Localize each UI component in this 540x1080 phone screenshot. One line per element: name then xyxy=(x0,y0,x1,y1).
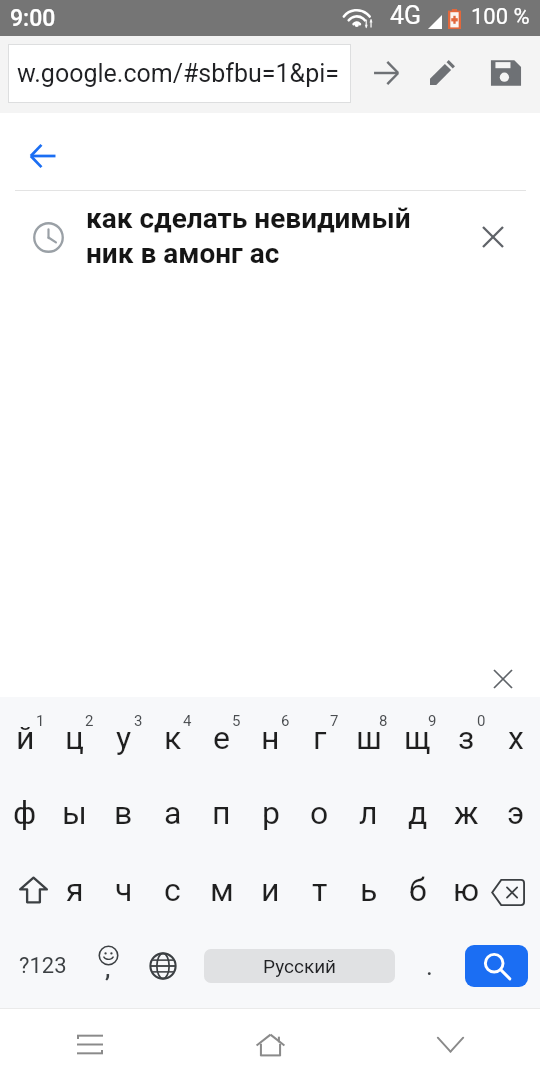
button[interactable]: о xyxy=(295,775,344,850)
staticText: й xyxy=(16,719,35,757)
button[interactable]: л xyxy=(344,775,393,850)
button[interactable]: Emoji xyxy=(85,933,131,999)
staticText: 2 xyxy=(85,712,94,730)
button[interactable]: Search xyxy=(465,945,528,987)
button[interactable]: w.google.com/#sbfbu=1&pi= xyxy=(8,44,351,103)
button[interactable]: Русский xyxy=(204,949,395,983)
button[interactable]: Shift xyxy=(0,852,50,927)
button[interactable]: Backspace xyxy=(491,852,540,927)
staticText: и xyxy=(261,871,280,909)
button[interactable]: с xyxy=(148,852,197,927)
button[interactable]: е xyxy=(197,700,246,774)
button[interactable]: д xyxy=(393,775,442,850)
staticText: ц xyxy=(65,719,84,757)
staticText: ф xyxy=(13,794,37,832)
button[interactable]: з xyxy=(442,700,491,774)
staticText: ч xyxy=(115,871,133,909)
staticText: г xyxy=(313,719,327,757)
staticText: о xyxy=(310,794,329,832)
staticText: w.google.com/#sbfbu=1&pi= xyxy=(17,59,339,88)
staticText: 7 xyxy=(330,712,339,730)
button[interactable]: Home xyxy=(180,1009,360,1080)
button[interactable]: Edit xyxy=(418,49,466,97)
staticText: у xyxy=(116,719,132,757)
staticText: ж xyxy=(454,794,479,832)
button[interactable]: Change language xyxy=(140,933,186,999)
staticText: с xyxy=(164,871,181,909)
staticText: 4G xyxy=(390,1,422,30)
button[interactable]: б xyxy=(393,852,442,927)
staticText: к xyxy=(164,719,182,757)
staticText: ы xyxy=(62,794,87,832)
staticText: ?123 xyxy=(19,953,67,979)
button[interactable]: т xyxy=(295,852,344,927)
button[interactable]: м xyxy=(197,852,246,927)
button[interactable]: ш xyxy=(344,700,393,774)
button[interactable]: н xyxy=(246,700,295,774)
staticText: э xyxy=(507,794,525,832)
button[interactable]: ы xyxy=(50,775,99,850)
staticText: 9 xyxy=(428,712,437,730)
button[interactable]: . xyxy=(406,933,452,999)
button[interactable]: Back xyxy=(360,1009,540,1080)
staticText: н xyxy=(261,719,280,757)
button[interactable]: ?123 xyxy=(12,933,74,999)
button[interactable]: ф xyxy=(0,775,50,850)
staticText: ю xyxy=(453,871,480,909)
button[interactable]: ж xyxy=(442,775,491,850)
button[interactable]: г xyxy=(295,700,344,774)
staticText: , xyxy=(105,957,111,983)
staticText: в xyxy=(114,794,133,832)
staticText: б xyxy=(409,871,427,909)
button[interactable]: Go xyxy=(362,49,410,97)
staticText: я xyxy=(66,871,84,909)
staticText: т xyxy=(312,871,328,909)
staticText: 0 xyxy=(477,712,486,730)
button[interactable]: к xyxy=(148,700,197,774)
staticText: р xyxy=(262,794,280,832)
button[interactable]: ц xyxy=(50,700,99,774)
button[interactable]: Back xyxy=(19,132,67,180)
button[interactable]: р xyxy=(246,775,295,850)
button[interactable]: ь xyxy=(344,852,393,927)
staticText: 9:00 xyxy=(10,5,56,32)
button[interactable]: я xyxy=(50,852,99,927)
staticText: п xyxy=(212,794,231,832)
button[interactable]: х xyxy=(491,700,540,774)
staticText: . xyxy=(426,951,433,981)
staticText: 1 xyxy=(36,712,45,730)
staticText: Русский xyxy=(263,955,337,977)
button[interactable]: у xyxy=(99,700,148,774)
staticText: 4 xyxy=(183,712,192,730)
button[interactable]: щ xyxy=(393,700,442,774)
staticText: ь xyxy=(360,871,378,909)
staticText: 3 xyxy=(134,712,143,730)
button[interactable]: в xyxy=(99,775,148,850)
button[interactable]: э xyxy=(491,775,540,850)
staticText: 6 xyxy=(281,712,290,730)
button[interactable]: ю xyxy=(442,852,491,927)
staticText: е xyxy=(213,719,230,757)
button[interactable]: Remove suggestion xyxy=(454,194,540,280)
button[interactable]: ч xyxy=(99,852,148,927)
staticText: 100 % xyxy=(471,4,530,30)
staticText: м xyxy=(210,871,234,909)
staticText: ш xyxy=(356,719,382,757)
staticText: 8 xyxy=(379,712,388,730)
button[interactable]: Hide keyboard xyxy=(486,662,520,696)
button[interactable]: как сделать невидимый ник в амонг ас xyxy=(0,194,540,280)
staticText: д xyxy=(408,794,428,832)
button[interactable]: и xyxy=(246,852,295,927)
staticText: л xyxy=(359,794,378,832)
button[interactable]: й xyxy=(0,700,50,774)
staticText: х xyxy=(508,719,524,757)
staticText: как сделать невидимый ник в амонг ас xyxy=(86,202,454,270)
button[interactable]: Recent apps xyxy=(0,1009,180,1080)
button[interactable]: п xyxy=(197,775,246,850)
staticText: 5 xyxy=(232,712,241,730)
staticText: а xyxy=(164,794,182,832)
staticText: з xyxy=(458,719,475,757)
staticText: щ xyxy=(404,719,431,757)
button[interactable]: Save bookmark xyxy=(482,49,530,97)
button[interactable]: а xyxy=(148,775,197,850)
